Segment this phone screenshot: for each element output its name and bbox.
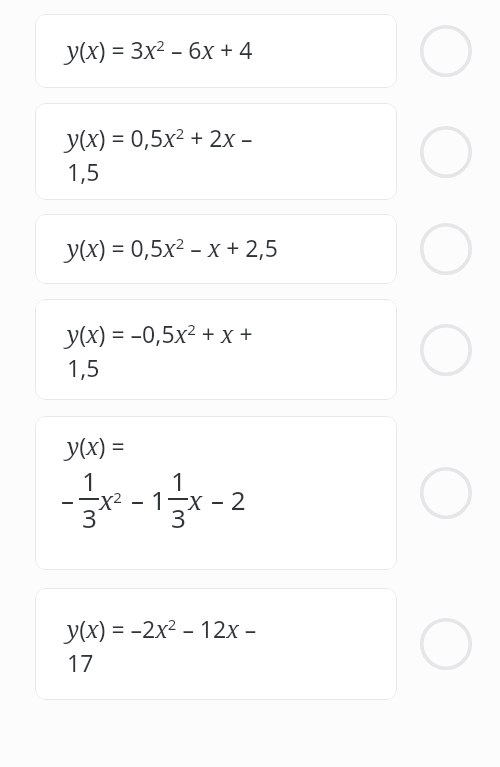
button[interactable]: Select answer — [418, 221, 474, 277]
staticText: – 2 — [211, 482, 246, 517]
staticText: 3 — [171, 500, 186, 535]
button[interactable]: Select answer — [418, 23, 474, 79]
staticText: – 1 — [131, 482, 166, 517]
button[interactable]: y(x) = — [35, 416, 397, 570]
button[interactable]: y(x) = –2x2 – 12x – — [35, 588, 397, 700]
staticText: 1,5 — [67, 352, 100, 383]
staticText: – — [61, 482, 75, 517]
staticText: 1 — [82, 463, 97, 498]
button[interactable]: y(x) = 0,5x2 – x + 2,5 — [35, 214, 397, 284]
button[interactable]: Select answer — [418, 465, 474, 521]
staticText: 3 — [82, 500, 97, 535]
button[interactable]: Select answer — [418, 322, 474, 378]
staticText: y(x) = –2x2 – 12x – — [67, 613, 257, 644]
staticText: y(x) = — [67, 430, 125, 461]
staticText: 1,5 — [67, 156, 100, 187]
staticText: y(x) = 0,5x2 + 2x – — [67, 122, 253, 153]
button[interactable]: y(x) = –0,5x2 + x + — [35, 299, 397, 400]
staticText: y(x) = –0,5x2 + x + — [67, 318, 253, 349]
staticText: x — [188, 482, 203, 517]
staticText: x2 — [99, 482, 122, 517]
button[interactable]: y(x) = 3x2 – 6x + 4 — [35, 14, 397, 88]
button[interactable]: Select answer — [418, 616, 474, 672]
staticText: 1 — [171, 463, 186, 498]
button[interactable]: y(x) = 0,5x2 + 2x – — [35, 103, 397, 200]
staticText: 17 — [67, 647, 94, 678]
staticText: y(x) = 3x2 – 6x + 4 — [67, 34, 253, 65]
button[interactable]: Select answer — [418, 124, 474, 180]
staticText: y(x) = 0,5x2 – x + 2,5 — [67, 232, 278, 263]
